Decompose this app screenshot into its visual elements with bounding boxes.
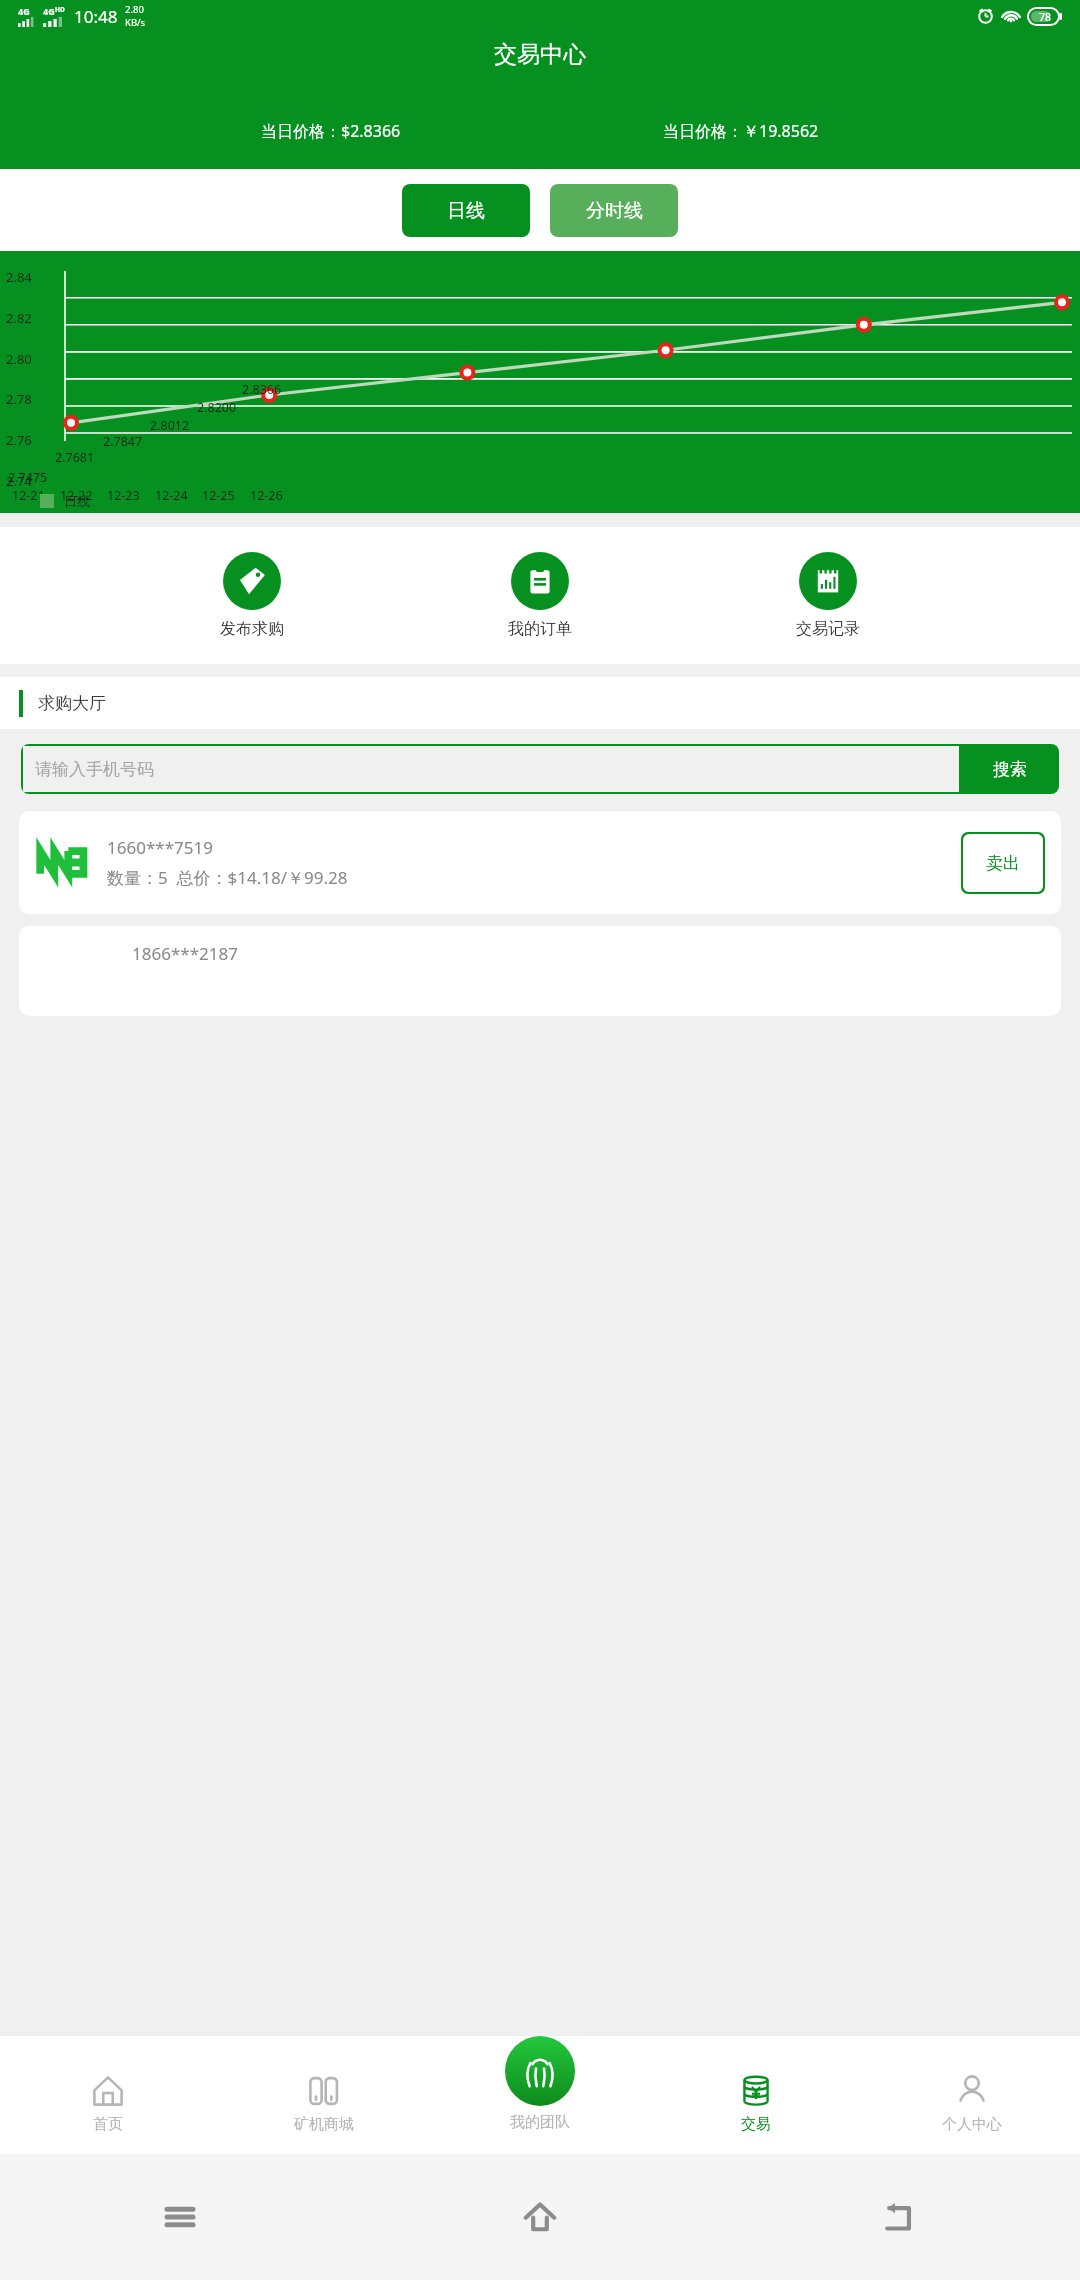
staticText: 发布求购 [220, 619, 284, 639]
staticText: HD [55, 5, 65, 14]
button[interactable]: 卖出 [963, 834, 1043, 892]
staticText: 当日价格：$2.8366 [261, 120, 401, 142]
button[interactable]: Back [720, 2154, 1080, 2280]
button[interactable]: Menu [0, 2154, 360, 2280]
staticText: 日线 [64, 493, 90, 509]
staticText: 2.8200 [197, 399, 237, 416]
staticText: 数量：5 总价：$14.18/￥99.28 [107, 866, 348, 889]
staticText: 首页 [93, 2115, 123, 2134]
staticText: 2.80 [6, 350, 32, 368]
button[interactable]: 首页 [0, 2053, 216, 2154]
staticText: 2.82 [6, 309, 32, 327]
staticText: 2.74 [6, 472, 32, 490]
staticText: 我的团队 [510, 2113, 570, 2132]
button[interactable]: 1660***7519 [19, 811, 1061, 914]
staticText: 个人中心 [942, 2115, 1002, 2134]
staticText: 2.80 [125, 3, 144, 16]
staticText: 12-23 [107, 487, 140, 504]
staticText: 12-25 [202, 487, 235, 504]
staticText: 请输入手机号码 [35, 759, 154, 780]
staticText: 矿机商城 [294, 2115, 354, 2134]
staticText: 4G [18, 5, 30, 17]
staticText: 交易记录 [796, 619, 860, 639]
staticText: 卖出 [986, 853, 1020, 874]
staticText: 搜索 [993, 759, 1027, 780]
staticText: 1660***7519 [107, 836, 213, 859]
staticText: 求购大厅 [38, 693, 106, 714]
button[interactable]: 矿机商城 [216, 2053, 432, 2154]
staticText: 2.8012 [150, 417, 190, 434]
staticText: 2.84 [6, 268, 32, 286]
staticText: 交易中心 [494, 40, 586, 69]
button[interactable]: 交易记录 [792, 548, 864, 643]
button[interactable]: 搜索 [961, 744, 1059, 794]
staticText: 当日价格：￥19.8562 [663, 120, 819, 142]
staticText: 2.76 [6, 431, 32, 449]
button[interactable]: 1866***2187 [19, 926, 1061, 1016]
button[interactable]: 请输入手机号码 [23, 746, 959, 792]
button[interactable]: 日线 [402, 184, 530, 237]
staticText: 12-24 [155, 487, 188, 504]
staticText: 4G [43, 5, 55, 17]
staticText: 2.7847 [103, 433, 143, 450]
button[interactable]: 发布求购 [216, 548, 288, 643]
staticText: 2.7475 [8, 469, 48, 486]
staticText: 78 [1039, 10, 1052, 24]
staticText: 1866***2187 [132, 942, 238, 965]
staticText: 12-21 [12, 487, 45, 504]
staticText: 日线 [447, 199, 485, 223]
button[interactable]: 我的订单 [504, 548, 576, 643]
staticText: 12-22 [60, 487, 93, 504]
button[interactable]: 分时线 [550, 184, 678, 237]
button[interactable]: 个人中心 [864, 2053, 1080, 2154]
staticText: 交易 [741, 2115, 771, 2134]
staticText: 分时线 [586, 199, 643, 223]
button[interactable]: 交易 [648, 2053, 864, 2154]
staticText: 2.7681 [55, 449, 95, 466]
button[interactable]: Home [360, 2154, 720, 2280]
staticText: 12-26 [250, 487, 283, 504]
staticText: 10:48 [74, 5, 118, 28]
staticText: 我的订单 [508, 619, 572, 639]
button[interactable]: 我的团队 [505, 2036, 575, 2106]
staticText: 2.78 [6, 390, 32, 408]
staticText: KB/s [125, 16, 146, 29]
staticText: 2.8366 [242, 381, 282, 398]
